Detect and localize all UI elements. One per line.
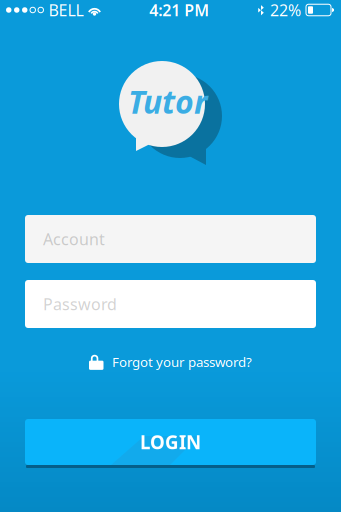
staticText: Password [43, 293, 117, 315]
staticText: Account [43, 228, 105, 250]
staticText: LOGIN [140, 430, 201, 454]
button[interactable]: LOGIN [25, 419, 316, 468]
button[interactable]: Forgot your password? [84, 350, 257, 374]
staticText: BELL [48, 0, 83, 21]
staticText: Tutor [128, 80, 208, 122]
staticText: 22% [270, 0, 301, 21]
staticText: 4:21 PM [149, 0, 209, 21]
staticText: Forgot your password? [112, 353, 252, 371]
